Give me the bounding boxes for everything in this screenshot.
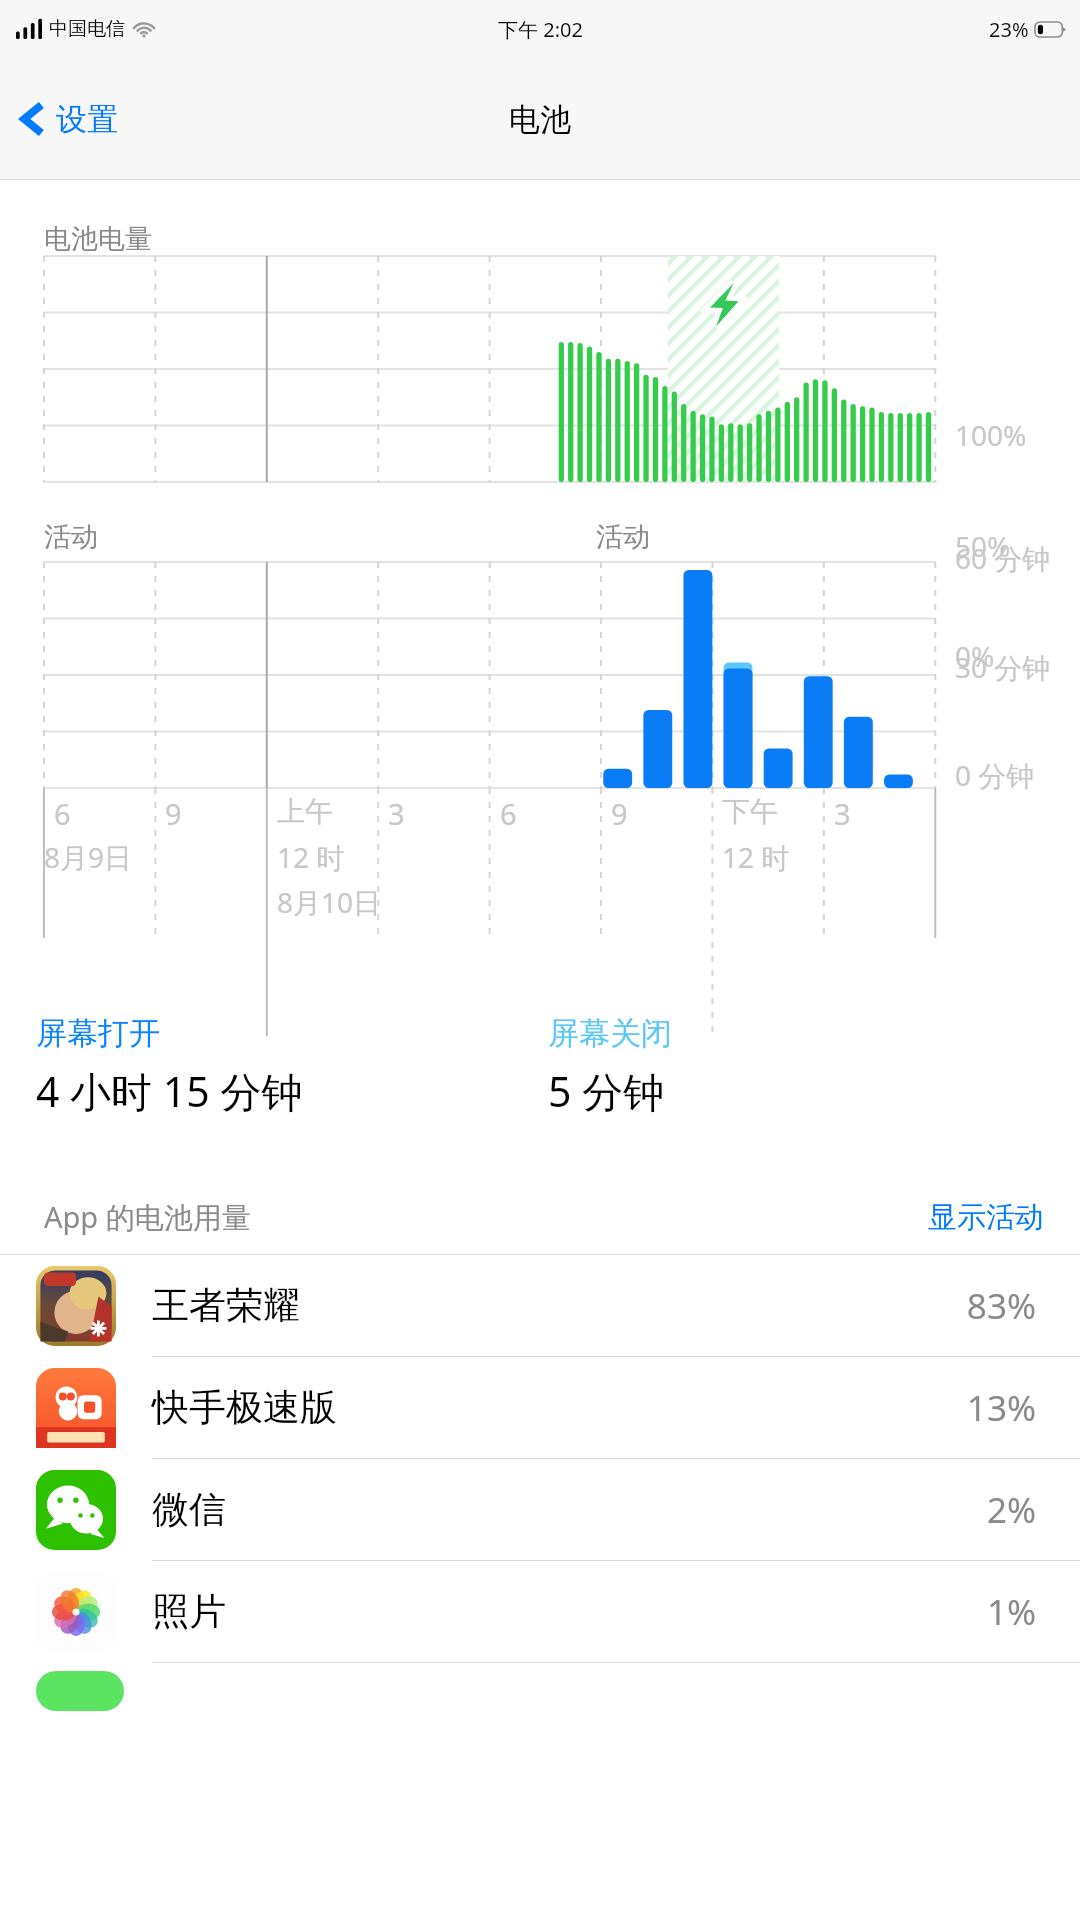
staticText: 活动 (596, 520, 650, 554)
staticText: 下午 2:02 (498, 16, 583, 43)
staticText: 8月9日 (44, 838, 133, 876)
staticText: 显示活动 (928, 1199, 1044, 1236)
staticText: 83% (966, 1282, 1036, 1330)
staticText: 电池 (509, 100, 571, 139)
staticText: 23% (989, 16, 1029, 43)
staticText: 快手极速版 (152, 1384, 337, 1431)
staticText: 50% (955, 527, 1011, 565)
staticText: 9 (165, 794, 182, 833)
staticText: 6 (54, 794, 71, 833)
staticText: 60 分钟 (955, 539, 1051, 577)
button[interactable]: 快手极速版 (0, 1357, 1080, 1458)
staticText: 2% (986, 1486, 1036, 1534)
staticText: 4 小时 15 分钟 (36, 1063, 303, 1119)
staticText: 设置 (56, 100, 118, 139)
staticText: 屏幕打开 (36, 1014, 160, 1053)
staticText: 100% (955, 416, 1027, 454)
staticText: 活动 (44, 520, 98, 554)
staticText: 9 (611, 794, 628, 833)
staticText: 照片 (152, 1588, 226, 1635)
staticText: 12 时 (722, 838, 790, 876)
staticText: 12 时 (277, 838, 345, 876)
staticText: 0 分钟 (955, 756, 1035, 794)
staticText: 6 (500, 794, 517, 833)
button[interactable]: 微信 (0, 1459, 1080, 1560)
staticText: 30 分钟 (955, 648, 1051, 686)
staticText: 5 分钟 (548, 1063, 665, 1119)
staticText: 1% (986, 1588, 1036, 1636)
staticText: 8月10日 (277, 883, 382, 921)
staticText: 13% (966, 1384, 1036, 1432)
staticText: 王者荣耀 (152, 1282, 300, 1329)
staticText: App 的电池用量 (44, 1197, 251, 1237)
staticText: 上午 (277, 794, 333, 829)
staticText: 3 (388, 794, 405, 833)
button[interactable]: 照片 (0, 1561, 1080, 1662)
staticText: 0% (955, 637, 995, 675)
staticText: 微信 (152, 1486, 226, 1533)
staticText: 中国电信 (49, 17, 125, 41)
staticText: 3 (834, 794, 851, 833)
button[interactable]: 王者荣耀 (0, 1255, 1080, 1356)
staticText: 屏幕关闭 (548, 1014, 672, 1053)
staticText: 下午 (722, 794, 778, 829)
button[interactable]: 设置 (0, 87, 132, 151)
staticText: 电池电量 (44, 222, 152, 256)
button[interactable]: 显示活动 (908, 1191, 1080, 1244)
